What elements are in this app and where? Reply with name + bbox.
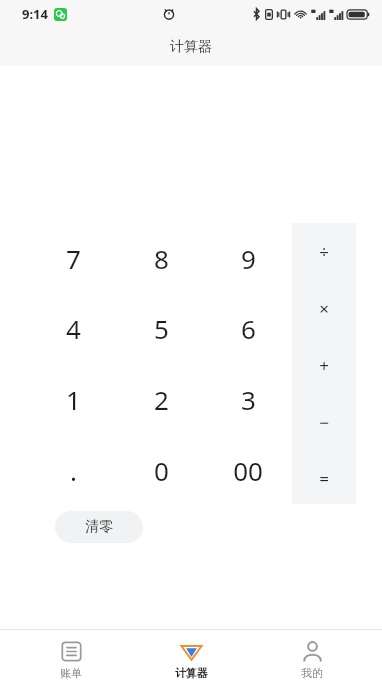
button[interactable]: ÷ [292,224,356,278]
button[interactable]: 5 [118,294,204,362]
staticText: 1 [66,382,81,417]
button[interactable]: 6 [205,294,291,362]
staticText: 2 [154,382,169,417]
staticText: = [319,467,329,490]
button[interactable]: 9 [205,224,291,292]
staticText: − [319,411,329,434]
staticText: . [70,453,77,488]
button[interactable]: 我的 [262,629,362,686]
staticText: 00 [233,453,263,488]
staticText: 3 [241,382,256,417]
button[interactable]: 2 [118,365,204,433]
staticText: 9:14 [22,5,48,23]
button[interactable]: − [292,395,356,449]
other: 账单 [60,640,83,663]
staticText: 9 [241,241,256,276]
staticText: 8 [154,241,169,276]
staticText: 我的 [301,666,323,680]
staticText: 0 [154,453,169,488]
button[interactable]: 7 [30,224,116,292]
button[interactable]: 0 [118,436,204,504]
button[interactable]: + [292,338,356,392]
staticText: 计算器 [175,666,208,680]
other: 计算器 [180,640,203,663]
button[interactable]: 3 [205,365,291,433]
button[interactable]: = [292,451,356,505]
staticText: 清零 [85,518,113,536]
other: 我的 [301,640,324,663]
button[interactable]: 账单 [21,629,121,686]
button[interactable]: 00 [205,436,291,504]
button[interactable]: 计算器 [141,629,241,686]
button[interactable]: × [292,281,356,335]
staticText: 4 [66,311,81,346]
button[interactable]: 清零 [55,511,143,543]
staticText: ÷ [319,240,329,263]
staticText: 账单 [60,666,82,680]
staticText: 6 [241,311,256,346]
staticText: + [319,354,329,377]
staticText: 7 [66,241,81,276]
staticText: × [319,297,329,320]
button[interactable]: 4 [30,294,116,362]
button[interactable]: . [30,436,116,504]
button[interactable]: 8 [118,224,204,292]
button[interactable]: 1 [30,365,116,433]
staticText: 计算器 [170,38,212,56]
staticText: 5 [154,311,169,346]
